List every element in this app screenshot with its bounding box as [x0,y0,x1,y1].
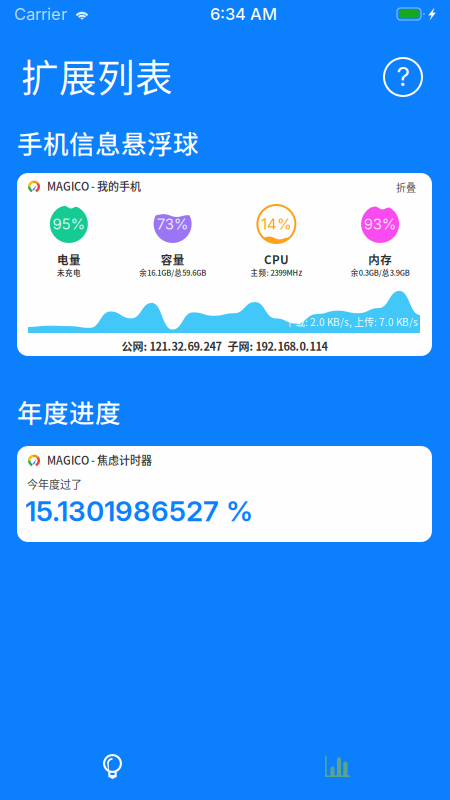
staticText: 未充电 [57,267,81,278]
staticText: 手机信息悬浮球 [17,124,199,161]
staticText: Carrier [14,4,67,24]
staticText: 扩展列表 [21,48,173,102]
staticText: 主频: 2399MHz [250,267,302,278]
staticText: 6:34 AM [210,4,277,24]
staticText: 容量 [161,251,185,268]
staticText: ? [396,61,409,92]
staticText: 14% [261,215,292,233]
staticText: 公网: 121.32.69.247 子网: 192.168.0.114 [121,338,327,354]
staticText: MAGICO - 我的手机 [47,178,141,194]
button[interactable]: 折叠 [389,176,423,198]
staticText: 内存 [368,251,392,268]
staticText: CPU [264,251,289,268]
staticText: 73% [157,215,189,233]
button[interactable]: Help [383,57,423,97]
staticText: 今年度过了 [27,476,82,492]
staticText: 余16.1GB/总59.6GB [139,267,206,278]
staticText: 年度进度 [17,393,121,430]
staticText: 余0.3GB/总3.9GB [351,267,410,278]
staticText: 95% [52,215,85,233]
staticText: 电量 [57,251,81,268]
staticText: 折叠 [396,180,416,194]
staticText: 下载: 2.0 KB/s, 上传: 7.0 KB/s [285,314,418,329]
staticText: 93% [364,215,397,233]
button[interactable]: Tips [86,737,139,795]
staticText: 15.1301986527 % [25,494,253,528]
button[interactable]: Statistics [309,740,366,793]
staticText: MAGICO - 焦虑计时器 [47,452,152,468]
